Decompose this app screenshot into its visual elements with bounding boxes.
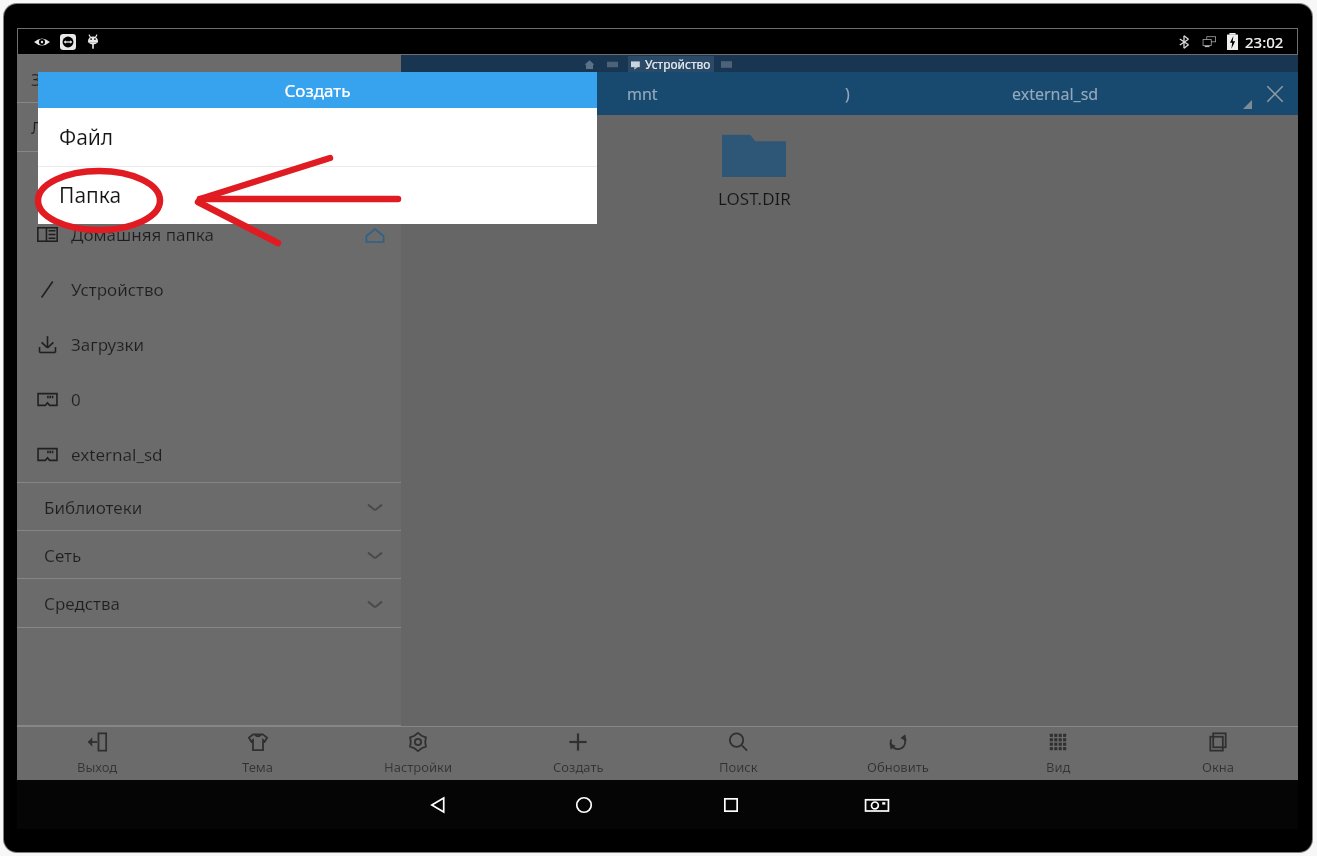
- button[interactable]: Close tab: [1264, 83, 1286, 105]
- button[interactable]: Создать: [498, 726, 658, 780]
- button[interactable]: Устройство: [631, 56, 711, 72]
- staticText: Недавние: [71, 168, 153, 191]
- staticText: Устройство: [645, 56, 711, 72]
- staticText: Устройство: [71, 278, 164, 301]
- staticText: external_sd: [1012, 83, 1099, 105]
- button[interactable]: Screenshot: [856, 784, 898, 826]
- button[interactable]: Back: [417, 784, 459, 826]
- staticText: mnt: [627, 83, 658, 105]
- button[interactable]: LOST.DIR: [689, 130, 819, 210]
- button[interactable]: Тема: [178, 726, 338, 780]
- button[interactable]: Файл: [38, 108, 597, 167]
- button[interactable]: 0: [17, 372, 401, 427]
- staticText: Файл: [59, 123, 114, 152]
- staticText: Библиотеки: [44, 496, 143, 519]
- staticText: Папка: [59, 181, 122, 210]
- button[interactable]: Загрузки: [17, 317, 401, 372]
- staticText: ): [845, 83, 850, 105]
- button[interactable]: Поиск: [658, 726, 818, 780]
- button[interactable]: Выход: [17, 726, 178, 780]
- staticText: Создать: [553, 758, 604, 776]
- staticText: Загрузки: [71, 333, 145, 356]
- button[interactable]: Создать: [38, 72, 597, 108]
- staticText: Поиск: [719, 758, 758, 776]
- staticText: Выход: [77, 758, 118, 776]
- staticText: Настройки: [384, 758, 453, 776]
- staticText: Средства: [44, 592, 121, 615]
- staticText: Локальные: [31, 116, 124, 139]
- button[interactable]: Библиотеки: [17, 483, 401, 531]
- button[interactable]: Сеть: [17, 531, 401, 579]
- other: Home tab: [584, 59, 595, 70]
- button[interactable]: Недавние: [17, 152, 401, 207]
- staticText: LOST.DIR: [718, 187, 791, 210]
- staticText: 23:02: [1245, 32, 1284, 52]
- staticText: Вид: [1046, 758, 1071, 776]
- button[interactable]: Закладки: [17, 55, 401, 103]
- staticText: external_sd: [71, 443, 163, 466]
- button[interactable]: Вид: [978, 726, 1138, 780]
- button[interactable]: Средства: [17, 579, 401, 628]
- other: Storage tab: [607, 59, 618, 70]
- staticText: Закладки: [31, 68, 109, 91]
- staticText: Окна: [1202, 758, 1235, 776]
- button[interactable]: Окна: [1138, 726, 1298, 780]
- button[interactable]: Папка: [38, 167, 597, 224]
- button[interactable]: Home: [563, 784, 605, 826]
- button[interactable]: external_sd: [17, 427, 401, 482]
- staticText: Тема: [242, 758, 274, 776]
- button[interactable]: Устройство: [17, 262, 401, 317]
- staticText: 0: [71, 388, 81, 411]
- staticText: Создать: [284, 79, 351, 102]
- button[interactable]: Домашняя папка: [17, 207, 401, 262]
- button[interactable]: Recents: [710, 784, 752, 826]
- staticText: Обновить: [867, 758, 929, 776]
- staticText: Домашняя папка: [71, 223, 214, 246]
- button[interactable]: Локальные: [17, 103, 401, 152]
- button[interactable]: Настройки: [338, 726, 498, 780]
- staticText: Сеть: [44, 544, 82, 567]
- other: Card tab: [721, 59, 732, 70]
- button[interactable]: Обновить: [818, 726, 978, 780]
